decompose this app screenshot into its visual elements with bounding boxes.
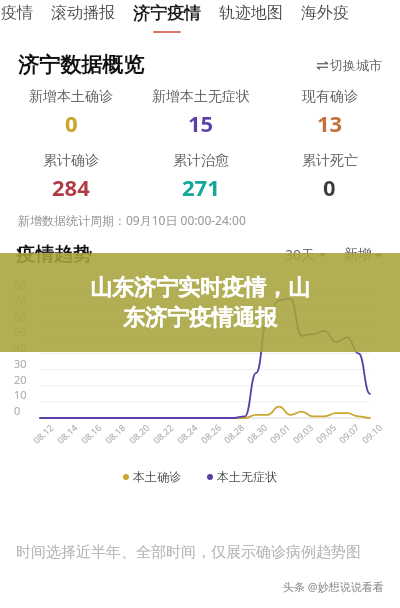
button[interactable]: 新增 <box>342 243 384 267</box>
staticText: 0 <box>65 108 78 138</box>
staticText: 20 <box>14 372 27 386</box>
staticText: 本土确诊 <box>133 469 181 484</box>
staticText: 现有确诊 <box>302 88 358 106</box>
staticText: 08.16 <box>78 421 104 446</box>
staticText: 09.05 <box>313 421 338 445</box>
staticText: 08.12 <box>30 421 56 446</box>
staticText: 累计治愈 <box>173 152 229 170</box>
staticText: 济宁数据概览 <box>18 52 144 78</box>
staticText: 30天 <box>285 245 316 264</box>
staticText: 13 <box>317 108 343 138</box>
staticText: 0 <box>323 172 336 202</box>
button[interactable]: 累计治愈 <box>136 152 265 202</box>
button[interactable]: 济宁疫情 <box>124 0 210 36</box>
staticText: 新增 <box>344 246 372 264</box>
staticText: 滚动播报 <box>51 3 115 23</box>
staticText: 累计确诊 <box>43 152 99 170</box>
staticText: 疫情趋势 <box>16 243 92 267</box>
staticText: 284 <box>52 172 90 202</box>
button[interactable]: 轨迹地图 <box>210 0 292 36</box>
staticText: 新增本土确诊 <box>29 88 113 106</box>
button[interactable]: 30天 <box>283 242 328 267</box>
staticText: 08.20 <box>126 421 152 446</box>
staticText: 09.07 <box>336 421 361 445</box>
button[interactable]: 海外疫 <box>292 0 358 36</box>
staticText: 30 <box>14 356 27 370</box>
staticText: 08.22 <box>150 421 176 446</box>
staticText: 济宁疫情 <box>133 3 201 24</box>
staticText: 50 <box>14 324 27 338</box>
staticText: 切换城市 <box>330 57 382 73</box>
staticText: 09.01 <box>267 421 292 445</box>
staticText: 08.18 <box>102 421 128 446</box>
staticText: 海外疫 <box>301 3 349 23</box>
staticText: 60 <box>14 309 27 323</box>
button[interactable]: 滚动播报 <box>42 0 124 36</box>
staticText: 头条 @妙想说说看看 <box>283 579 384 594</box>
staticText: 271 <box>182 172 220 202</box>
staticText: 09.03 <box>290 421 315 445</box>
staticText: 山东济宁实时疫情，山 东济宁疫情通报 <box>46 274 354 332</box>
staticText: 新增数据统计周期：09月10日 00:00-24:00 <box>18 212 246 228</box>
staticText: 70 <box>14 293 27 307</box>
button[interactable]: 州疫情 <box>0 0 42 36</box>
button[interactable]: 本土确诊 <box>121 467 183 486</box>
button[interactable]: 新增本土无症状 <box>136 88 265 138</box>
staticText: 时间选择近半年、全部时间，仅展示确诊病例趋势图 <box>16 543 361 562</box>
staticText: 08.24 <box>174 421 200 446</box>
staticText: 40 <box>14 340 27 354</box>
staticText: 州疫情 <box>0 3 33 23</box>
staticText: 08.14 <box>54 421 80 446</box>
staticText: 09.10 <box>359 421 384 445</box>
staticText: 新增本土无症状 <box>152 88 250 106</box>
staticText: 08.26 <box>198 421 223 445</box>
staticText: 0 <box>14 403 21 417</box>
button[interactable]: 新增本土确诊 <box>6 88 136 138</box>
button[interactable]: 切换城市 <box>313 53 386 77</box>
staticText: 本土无症状 <box>217 469 277 484</box>
staticText: 08.28 <box>221 421 246 445</box>
button[interactable]: 累计死亡 <box>265 152 394 202</box>
staticText: 80 <box>14 277 27 291</box>
staticText: 15 <box>188 108 214 138</box>
staticText: 累计死亡 <box>302 152 358 170</box>
staticText: 轨迹地图 <box>219 3 283 23</box>
button[interactable]: 本土无症状 <box>205 467 279 486</box>
staticText: 10 <box>14 387 27 401</box>
staticText: 08.30 <box>244 421 269 445</box>
button[interactable]: 累计确诊 <box>6 152 136 202</box>
button[interactable]: 现有确诊 <box>265 88 394 138</box>
